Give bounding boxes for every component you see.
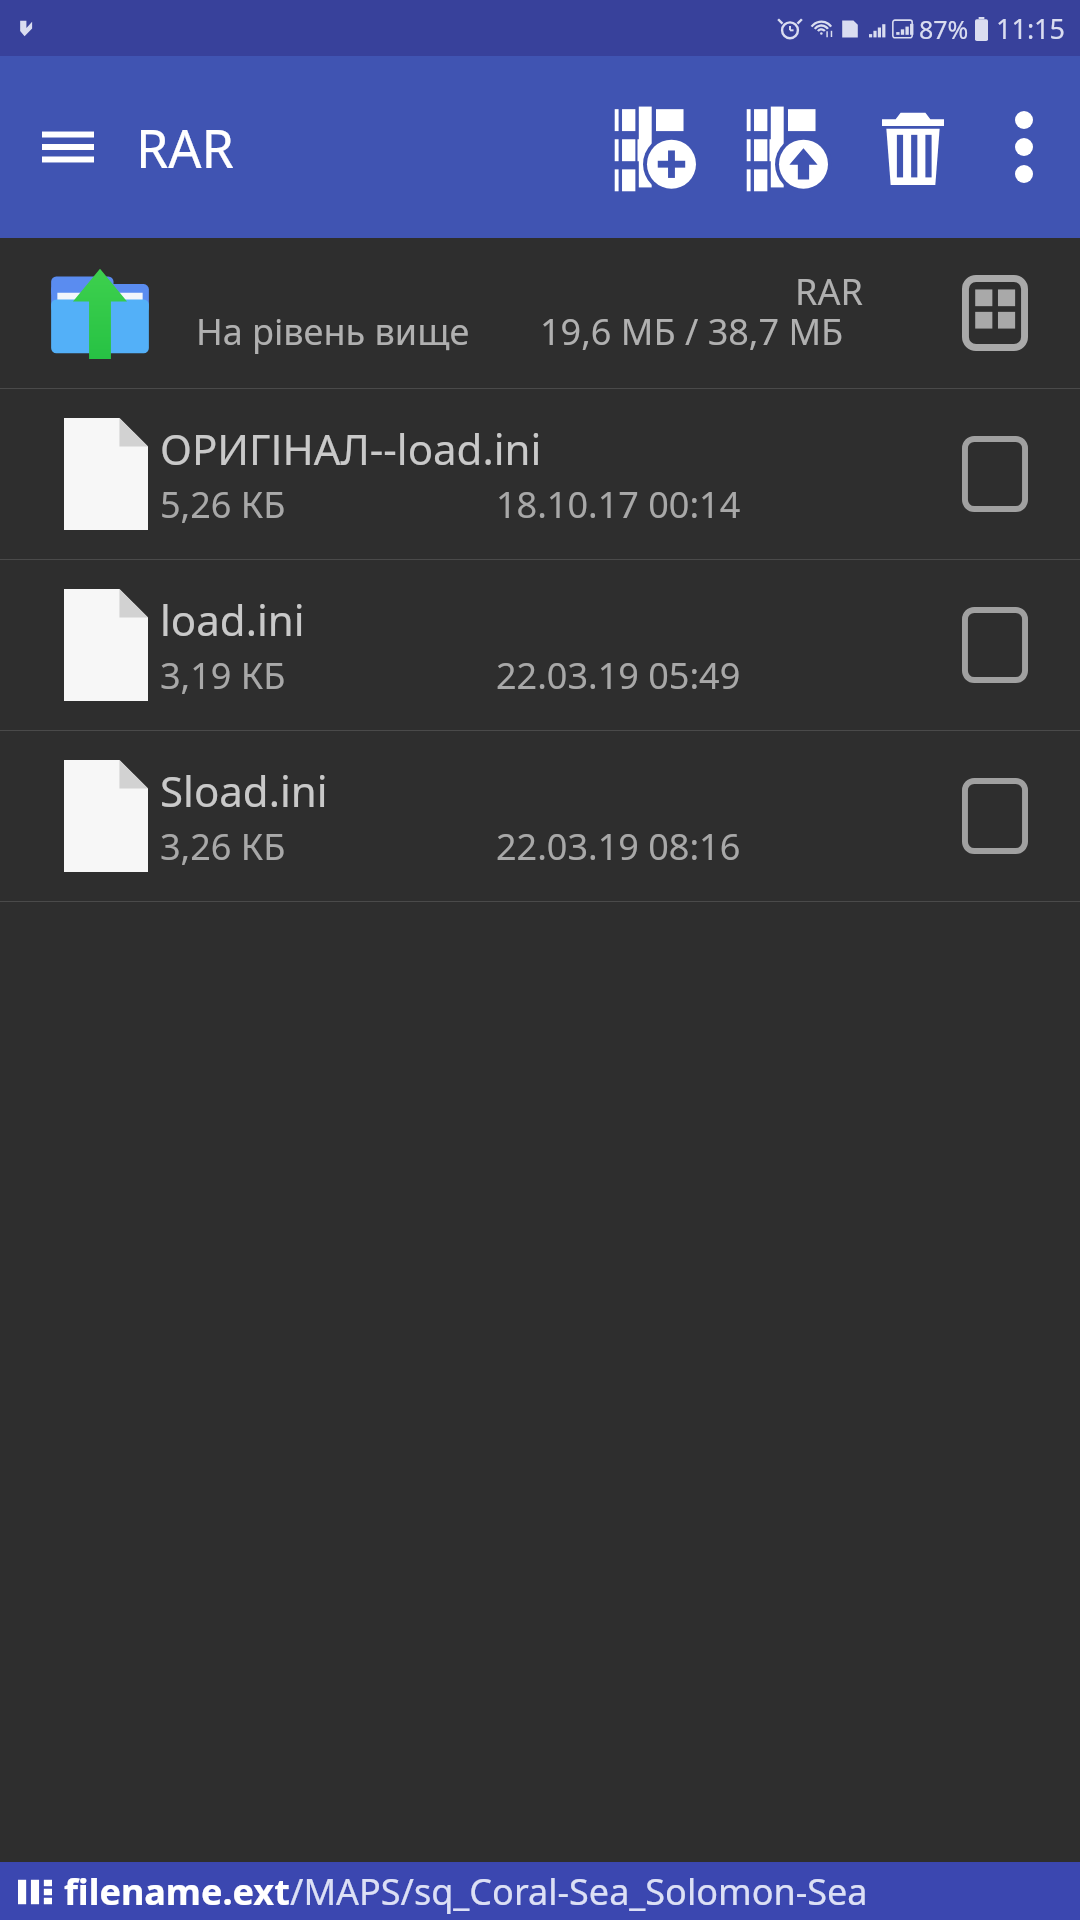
staticText: ОРИГІНАЛ--load.ini	[160, 420, 542, 477]
button[interactable]: Select ОРИГІНАЛ--load.ini	[962, 436, 1028, 512]
staticText: 5,26 КБ	[160, 480, 286, 529]
button[interactable]: На рівень вище	[0, 238, 1080, 388]
button[interactable]: ОРИГІНАЛ--load.ini	[0, 389, 1080, 559]
button[interactable]: Open navigation menu	[0, 56, 136, 238]
staticText: /MAPS/sq_Coral-Sea_Solomon-Sea	[290, 1867, 868, 1916]
staticText: 87%	[919, 12, 969, 46]
staticText: RAR	[795, 267, 863, 316]
staticText: Sload.ini	[160, 762, 328, 819]
staticText: 11:15	[996, 10, 1066, 47]
staticText: RAR	[136, 112, 234, 183]
staticText: 18.10.17 00:14	[496, 480, 741, 529]
button[interactable]: More options	[972, 56, 1076, 238]
button[interactable]: Delete	[854, 56, 972, 238]
button[interactable]: Select Sload.ini	[962, 778, 1028, 854]
staticText: На рівень вище	[196, 307, 470, 356]
staticText: 3,19 КБ	[160, 651, 286, 700]
button[interactable]: Archive info	[962, 275, 1028, 351]
staticText: 22.03.19 05:49	[496, 651, 741, 700]
button[interactable]: Extract archive	[722, 56, 854, 238]
staticText: 22.03.19 08:16	[496, 822, 741, 871]
button[interactable]: Sload.ini	[0, 731, 1080, 901]
staticText: filename.ext	[64, 1867, 290, 1916]
button[interactable]: Add to archive	[590, 56, 722, 238]
staticText: 3,26 КБ	[160, 822, 286, 871]
staticText: 19,6 МБ / 38,7 МБ	[540, 307, 844, 356]
staticText: load.ini	[160, 591, 305, 648]
button[interactable]: Select load.ini	[962, 607, 1028, 683]
button[interactable]: load.ini	[0, 560, 1080, 730]
button[interactable]: filename.ext	[0, 1862, 1080, 1920]
